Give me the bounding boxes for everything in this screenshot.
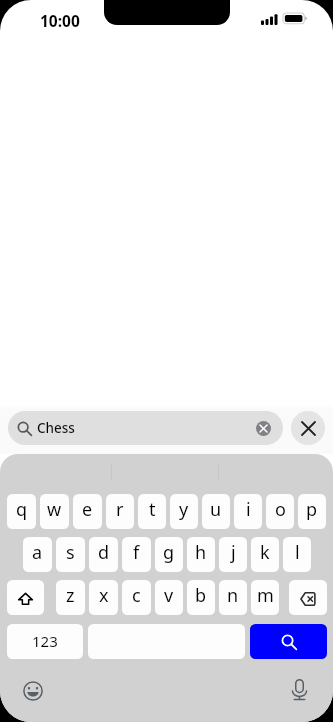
button[interactable]: k: [251, 537, 279, 572]
staticText: o: [275, 497, 286, 522]
staticText: b: [195, 583, 207, 608]
button[interactable]: o: [266, 494, 294, 529]
button[interactable]: z: [56, 580, 85, 615]
button[interactable]: Backspace: [289, 580, 327, 615]
staticText: p: [306, 497, 318, 522]
staticText: d: [98, 540, 110, 565]
button[interactable]: d: [89, 537, 118, 572]
button[interactable]: h: [187, 537, 215, 572]
button[interactable]: w: [40, 494, 69, 529]
staticText: e: [82, 497, 93, 522]
button[interactable]: s: [56, 537, 85, 572]
button[interactable]: i: [234, 494, 262, 529]
button[interactable]: Close search: [291, 411, 325, 445]
button[interactable]: p: [298, 494, 326, 529]
staticText: y: [179, 497, 189, 522]
button[interactable]: 123: [7, 624, 83, 659]
button[interactable]: n: [219, 580, 247, 615]
staticText: Chess: [37, 419, 75, 437]
staticText: c: [132, 583, 141, 608]
button[interactable]: Clear text: [256, 421, 271, 436]
button[interactable]: Shift: [7, 580, 44, 615]
staticText: u: [210, 497, 222, 522]
button[interactable]: Search: [250, 624, 327, 659]
button[interactable]: Dictate: [292, 679, 307, 701]
staticText: m: [257, 583, 274, 608]
button[interactable]: t: [138, 494, 166, 529]
button[interactable]: q: [7, 494, 36, 529]
button[interactable]: e: [73, 494, 102, 529]
staticText: t: [149, 497, 156, 522]
button[interactable]: Emoji: [22, 680, 43, 701]
button[interactable]: l: [283, 537, 311, 572]
button[interactable]: x: [89, 580, 118, 615]
button[interactable]: g: [155, 537, 183, 572]
button[interactable]: m: [251, 580, 279, 615]
button[interactable]: r: [106, 494, 134, 529]
staticText: g: [163, 540, 175, 565]
staticText: h: [195, 540, 207, 565]
staticText: r: [116, 497, 124, 522]
staticText: v: [164, 583, 174, 608]
staticText: l: [295, 540, 300, 565]
staticText: j: [231, 540, 236, 565]
staticText: 10:00: [40, 10, 80, 31]
button[interactable]: v: [155, 580, 183, 615]
staticText: q: [16, 497, 28, 522]
button[interactable]: Chess: [8, 411, 283, 445]
button[interactable]: u: [202, 494, 230, 529]
staticText: s: [66, 540, 75, 565]
staticText: k: [260, 540, 270, 565]
button[interactable]: a: [23, 537, 52, 572]
staticText: a: [32, 540, 43, 565]
button[interactable]: f: [122, 537, 151, 572]
button[interactable]: j: [219, 537, 247, 572]
staticText: 123: [32, 631, 58, 651]
button[interactable]: b: [187, 580, 215, 615]
staticText: x: [99, 583, 109, 608]
staticText: z: [66, 583, 75, 608]
staticText: f: [133, 540, 140, 565]
button[interactable]: y: [170, 494, 198, 529]
staticText: n: [227, 583, 239, 608]
staticText: i: [246, 497, 251, 522]
staticText: w: [47, 497, 62, 522]
button[interactable]: c: [122, 580, 151, 615]
